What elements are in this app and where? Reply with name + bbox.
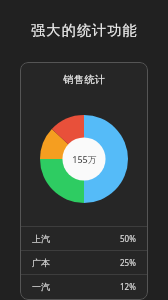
staticText: 12% xyxy=(120,281,136,292)
staticText: 155万 xyxy=(72,153,97,165)
button[interactable]: 销售统计 xyxy=(20,62,148,300)
staticText: 50% xyxy=(120,233,136,244)
staticText: 25% xyxy=(120,257,136,268)
button[interactable]: 广本 xyxy=(20,251,148,274)
staticText: 广本 xyxy=(32,257,50,268)
staticText: 上汽 xyxy=(32,233,50,244)
button[interactable]: 上汽 xyxy=(20,227,148,250)
staticText: 一汽 xyxy=(32,281,50,292)
staticText: 销售统计 xyxy=(63,73,106,86)
staticText: 强大的统计功能 xyxy=(31,22,138,40)
button[interactable]: 一汽 xyxy=(20,275,148,298)
